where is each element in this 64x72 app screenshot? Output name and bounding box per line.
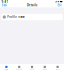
staticText: Alerts [43, 68, 47, 70]
button[interactable]: More [51, 64, 64, 72]
staticText: Edit [57, 3, 62, 7]
button[interactable]: Profile name [1, 14, 63, 20]
staticText: 9:41 [2, 0, 9, 3]
staticText: Search [16, 68, 22, 70]
button[interactable]: Alerts [38, 64, 51, 72]
button[interactable]: Saved [26, 64, 38, 72]
button[interactable]: Back [0, 3, 8, 7]
staticText: Profile name [7, 15, 25, 19]
staticText: Saved [29, 68, 34, 70]
button[interactable]: Search [13, 64, 26, 72]
staticText: Back [2, 3, 7, 7]
button[interactable]: Edit [56, 3, 64, 7]
button[interactable]: Home [0, 64, 13, 72]
staticText: More [56, 68, 60, 70]
staticText: Home [4, 68, 8, 70]
staticText: Details [27, 3, 37, 7]
